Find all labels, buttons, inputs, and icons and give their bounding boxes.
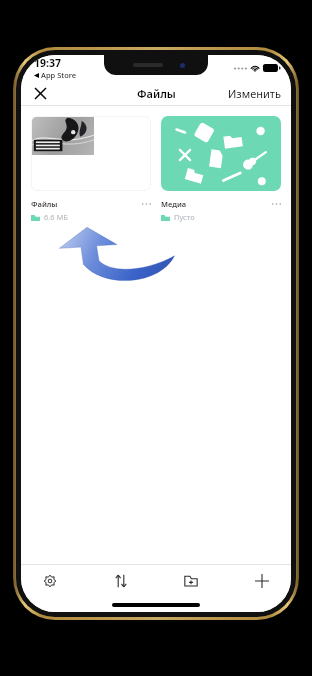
button[interactable]: Файлы [31, 199, 151, 222]
staticText: App Store [41, 70, 77, 80]
staticText: Файлы [137, 86, 176, 101]
staticText: Файлы [31, 199, 58, 209]
button[interactable]: Settings [37, 568, 63, 594]
button[interactable]: New folder [178, 568, 204, 594]
staticText: 19:37 [34, 56, 61, 70]
staticText: 6.6 МБ [44, 212, 68, 222]
button[interactable] [31, 116, 151, 191]
staticText: Медиа [161, 199, 187, 209]
button[interactable]: Медиа [161, 199, 281, 222]
button[interactable]: Add [249, 568, 275, 594]
button[interactable]: Изменить [226, 82, 283, 105]
button[interactable] [161, 116, 281, 191]
button[interactable]: Sort [108, 568, 134, 594]
staticText: Пусто [174, 212, 195, 222]
button[interactable]: Close [27, 81, 53, 105]
staticText: Изменить [228, 86, 281, 101]
